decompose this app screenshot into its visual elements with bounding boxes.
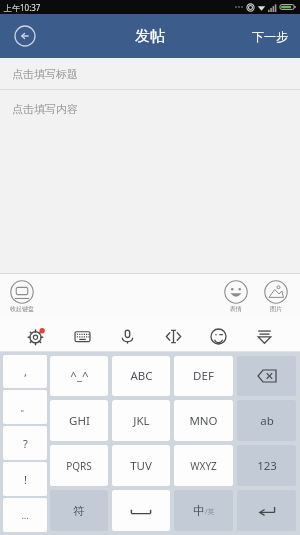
staticText: … [21, 509, 29, 521]
staticText: MNO [189, 413, 218, 429]
button[interactable]: WXYZ [174, 445, 233, 486]
staticText: GHI [69, 413, 90, 429]
button[interactable]: 符 [50, 490, 108, 531]
button[interactable]: 中 [174, 490, 233, 531]
button[interactable]: MNO [174, 400, 233, 441]
button[interactable]: Settings [21, 321, 51, 351]
button[interactable]: Backspace [237, 356, 296, 396]
button[interactable]: ! [3, 462, 47, 496]
button[interactable]: TUV [112, 445, 170, 486]
button[interactable]: , [3, 355, 47, 388]
staticText: 点击填写内容 [12, 102, 78, 116]
button[interactable]: ? [3, 426, 47, 460]
button[interactable]: 图片 [260, 280, 292, 313]
staticText: , [24, 364, 27, 379]
button[interactable]: GHI [50, 400, 108, 441]
button[interactable]: 收起键盘 [8, 278, 36, 315]
button[interactable]: Hide keyboard [249, 321, 279, 351]
staticText: DEF [193, 368, 214, 384]
button[interactable]: 点击填写标题 [0, 58, 300, 89]
staticText: 点击填写标题 [12, 67, 78, 81]
button[interactable]: DEF [174, 356, 233, 396]
staticText: 表情 [230, 305, 242, 313]
button[interactable]: 123 [237, 445, 296, 486]
button[interactable]: Cursor [158, 321, 188, 351]
button[interactable]: Keyboard layout [67, 321, 97, 351]
button[interactable]: … [3, 498, 47, 532]
staticText: 。 [20, 400, 31, 414]
staticText: 收起键盘 [10, 305, 34, 313]
staticText: 图片 [270, 305, 282, 313]
staticText: ab [260, 413, 274, 429]
staticText: ^_^ [70, 368, 89, 384]
staticText: 符 [73, 504, 85, 518]
staticText: ABC [130, 368, 153, 384]
button[interactable]: Emoji [203, 321, 233, 351]
button[interactable]: Back [8, 19, 42, 53]
staticText: JKL [133, 413, 150, 429]
button[interactable]: PQRS [50, 445, 108, 486]
button[interactable]: ab [237, 400, 296, 441]
staticText: 123 [257, 458, 277, 474]
staticText: PQRS [66, 459, 92, 473]
button[interactable]: 点击填写内容 [0, 90, 300, 273]
button[interactable]: JKL [112, 400, 170, 441]
button[interactable]: ^_^ [50, 356, 108, 396]
staticText: 发帖 [135, 27, 165, 46]
button[interactable]: ABC [112, 356, 170, 396]
staticText: 上午10:37 [4, 2, 41, 13]
staticText: ? [23, 436, 28, 451]
button[interactable]: 下一步 [240, 19, 300, 54]
staticText: WXYZ [190, 459, 217, 473]
staticText: TUV [130, 458, 152, 474]
button[interactable]: Voice input [112, 321, 142, 351]
button[interactable]: Space [112, 490, 170, 531]
button[interactable]: 表情 [220, 280, 252, 313]
staticText: ! [24, 472, 27, 487]
staticText: /英 [205, 507, 215, 517]
button[interactable]: Enter [237, 490, 296, 531]
staticText: 中 [193, 503, 205, 518]
staticText: 下一步 [252, 29, 288, 44]
button[interactable]: 。 [3, 390, 47, 424]
